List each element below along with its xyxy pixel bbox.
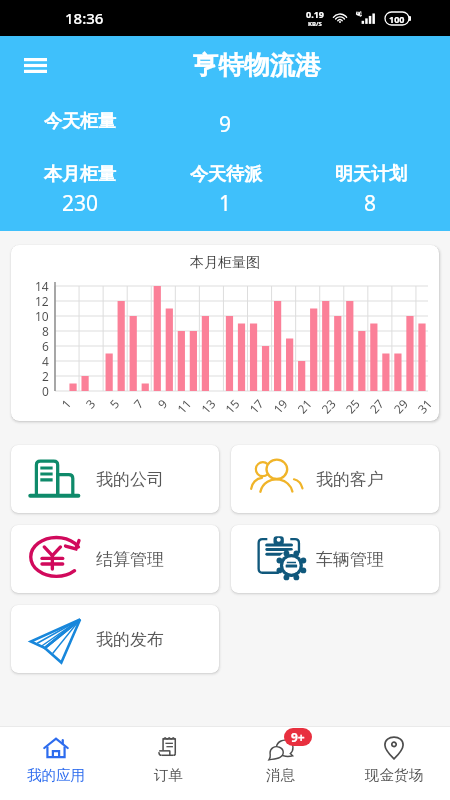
staticText: 我的公司 <box>96 469 164 490</box>
staticText: 我的发布 <box>96 629 164 650</box>
staticText: 本月柜量 <box>44 163 116 186</box>
button[interactable]: 我的发布 <box>11 605 219 673</box>
staticText: 我的应用 <box>27 766 85 784</box>
staticText: 现金货场 <box>365 766 423 784</box>
staticText: 结算管理 <box>96 549 164 570</box>
staticText: 车辆管理 <box>316 549 384 570</box>
button[interactable]: 结算管理 <box>11 525 219 593</box>
staticText: 230 <box>62 189 99 218</box>
button[interactable]: 订单 <box>112 727 224 800</box>
button[interactable]: 我的客户 <box>231 445 439 513</box>
staticText: 9 <box>219 110 232 139</box>
staticText: 100 <box>389 13 405 25</box>
button[interactable]: 9+ <box>224 727 337 800</box>
staticText: 今天待派 <box>190 163 262 186</box>
staticText: 消息 <box>266 766 295 784</box>
staticText: 0.19 <box>306 8 324 20</box>
staticText: 亨特物流港 <box>193 49 321 81</box>
staticText: 今天柜量 <box>44 110 116 133</box>
staticText: 明天计划 <box>335 163 407 186</box>
staticText: KB/S <box>308 20 322 28</box>
button[interactable]: 现金货场 <box>337 727 450 800</box>
staticText: 我的客户 <box>316 469 384 490</box>
button[interactable]: 车辆管理 <box>231 525 439 593</box>
staticText: 9+ <box>291 729 305 745</box>
staticText: 订单 <box>154 766 183 784</box>
staticText: 1 <box>219 189 232 218</box>
button[interactable]: Menu <box>7 37 63 93</box>
button[interactable]: 我的公司 <box>11 445 219 513</box>
staticText: 8 <box>364 189 377 218</box>
button[interactable]: 我的应用 <box>0 727 112 800</box>
staticText: 本月柜量图 <box>190 254 260 272</box>
staticText: 18:36 <box>65 8 104 28</box>
